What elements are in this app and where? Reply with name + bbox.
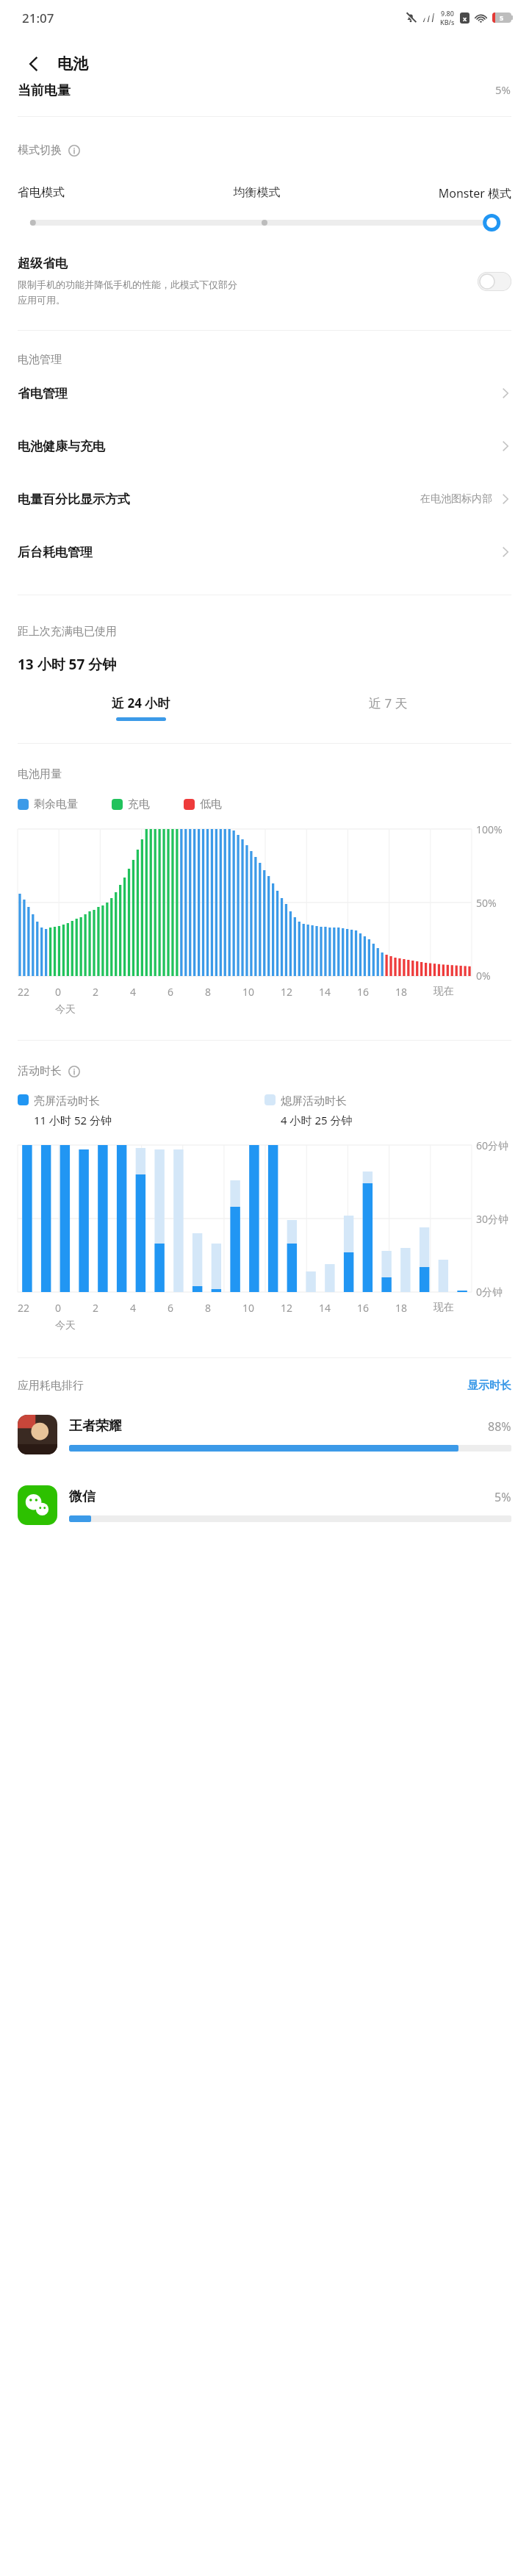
button[interactable]: 电池健康与充电 [0, 420, 529, 473]
staticText: 16 [357, 1301, 395, 1315]
staticText: 今天 [55, 1319, 93, 1332]
staticText: 0 [55, 1301, 93, 1315]
staticText: 4 [130, 1301, 168, 1315]
button[interactable]: 超级省电开关 [478, 272, 511, 291]
staticText: 60分钟 [476, 1138, 509, 1152]
staticText: 显示时长 [467, 1379, 511, 1393]
staticText: 13 小时 57 分钟 [18, 655, 117, 674]
staticText: KB/s [440, 18, 455, 26]
button[interactable]: 超级省电 [0, 251, 529, 311]
staticText: 亮屏活动时长 [34, 1094, 100, 1108]
staticText: 现在 [433, 1301, 472, 1314]
staticText: 超级省电 [18, 256, 68, 271]
staticText: 电池管理 [18, 353, 62, 367]
staticText: 当前电量 [18, 82, 71, 97]
staticText: 4 小时 25 分钟 [281, 1113, 353, 1127]
staticText: 活动时长 [18, 1064, 62, 1078]
staticText: 8 [205, 1301, 242, 1315]
staticText: 限制手机的功能并降低手机的性能，此模式下仅部分 应用可用。 [18, 279, 237, 306]
staticText: 12 [281, 985, 319, 999]
staticText: 5 [500, 13, 504, 22]
staticText: 100% [476, 822, 503, 836]
button[interactable]: 近 7 天 [264, 695, 511, 721]
staticText: 熄屏活动时长 [281, 1094, 347, 1108]
staticText: 电池健康与充电 [18, 439, 500, 454]
staticText: 10 [242, 985, 281, 999]
staticText: 现在 [433, 985, 472, 998]
staticText: 近 7 天 [369, 695, 408, 711]
staticText: 18 [395, 985, 433, 999]
button[interactable]: 微信 [0, 1485, 529, 1525]
staticText: 88% [488, 1418, 511, 1435]
staticText: 6 [168, 985, 205, 999]
staticText: 5% [494, 1489, 511, 1505]
staticText: 在电池图标内部 [420, 492, 492, 506]
staticText: 模式切换 [18, 143, 62, 157]
staticText: 21:07 [22, 10, 54, 26]
staticText: 16 [357, 985, 395, 999]
staticText: 0% [476, 969, 491, 983]
staticText: 14 [319, 1301, 357, 1315]
staticText: 0 [55, 985, 93, 999]
staticText: 50% [476, 896, 497, 910]
staticText: 0分钟 [476, 1285, 503, 1299]
button[interactable]: 活动时长说明 [68, 1065, 81, 1078]
staticText: 14 [319, 985, 357, 999]
staticText: 后台耗电管理 [18, 545, 500, 560]
staticText: 微信 [69, 1488, 494, 1505]
button[interactable]: 后台耗电管理 [0, 525, 529, 578]
staticText: 10 [242, 1301, 281, 1315]
staticText: 今天 [55, 1003, 93, 1016]
button[interactable]: 近 24 小时 [18, 695, 264, 721]
button[interactable]: 省电模式 [18, 185, 177, 200]
staticText: 2 [93, 985, 130, 999]
staticText: 5% [495, 82, 511, 97]
staticText: x [463, 14, 467, 23]
staticText: 低电 [200, 797, 222, 811]
staticText: 近 24 小时 [112, 695, 170, 711]
staticText: 4 [130, 985, 168, 999]
staticText: 电量百分比显示方式 [18, 492, 420, 507]
button[interactable]: 省电管理 [0, 367, 529, 420]
button[interactable]: 显示时长 [467, 1379, 511, 1393]
staticText: 省电管理 [18, 386, 500, 401]
staticText: 距上次充满电已使用 [18, 625, 117, 639]
button[interactable]: 电量百分比显示方式 [0, 473, 529, 525]
staticText: 22 [18, 1301, 55, 1315]
staticText: 电池 [57, 54, 88, 73]
button[interactable]: 王者荣耀 [0, 1415, 529, 1454]
staticText: 11 小时 52 分钟 [34, 1113, 112, 1127]
button[interactable]: Monster 模式 [337, 185, 511, 201]
button[interactable]: 模式切换说明 [68, 144, 81, 157]
staticText: 22 [18, 985, 55, 999]
button[interactable] [18, 212, 511, 234]
button[interactable]: 均衡模式 [177, 185, 337, 200]
button[interactable]: Back [16, 46, 51, 82]
staticText: 充电 [128, 797, 150, 811]
staticText: 30分钟 [476, 1212, 509, 1226]
staticText: 18 [395, 1301, 433, 1315]
staticText: 电池用量 [18, 767, 62, 781]
staticText: 6 [168, 1301, 205, 1315]
staticText: 2 [93, 1301, 130, 1315]
staticText: 12 [281, 1301, 319, 1315]
staticText: 9.80 [441, 9, 454, 18]
staticText: 应用耗电排行 [18, 1379, 467, 1393]
staticText: 8 [205, 985, 242, 999]
staticText: 王者荣耀 [69, 1418, 488, 1435]
staticText: 剩余电量 [34, 797, 78, 811]
